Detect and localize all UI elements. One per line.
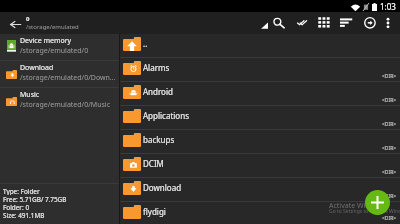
staticText: Size: 491.1MB bbox=[3, 211, 45, 219]
staticText: <DIR> bbox=[382, 145, 397, 152]
staticText: /storage/emulated/0/Down… bbox=[20, 73, 118, 83]
button[interactable]: Signal bbox=[254, 12, 275, 34]
staticText: /storage/emulated/0 bbox=[20, 46, 118, 56]
staticText: Download bbox=[20, 63, 118, 73]
button[interactable]: More options bbox=[377, 12, 398, 34]
staticText: Download bbox=[143, 182, 182, 193]
button[interactable]: Download bbox=[0, 61, 119, 87]
button[interactable]: flydigi bbox=[120, 202, 400, 224]
button[interactable]: Device memory bbox=[0, 34, 119, 60]
staticText: <DIR> bbox=[382, 193, 397, 200]
staticText: Device memory bbox=[20, 36, 118, 46]
staticText: Alarms bbox=[143, 62, 170, 73]
staticText: 1:03 bbox=[380, 1, 396, 12]
button[interactable]: Search bbox=[268, 12, 289, 34]
button[interactable]: Select all bbox=[292, 12, 313, 34]
button[interactable]: backups bbox=[120, 130, 400, 154]
staticText: Free: 5.71GB/ 7.75GB bbox=[3, 195, 67, 203]
staticText: Music bbox=[20, 90, 118, 100]
button[interactable]: Add bbox=[365, 190, 390, 215]
button[interactable]: Alarms bbox=[120, 58, 400, 82]
staticText: /storage/emulated/0/Music bbox=[20, 100, 118, 110]
staticText: Activate Windows bbox=[329, 201, 387, 211]
button[interactable]: DCIM bbox=[120, 154, 400, 178]
staticText: <DIR> bbox=[382, 169, 397, 176]
staticText: .. bbox=[143, 38, 148, 49]
button[interactable]: Download bbox=[120, 178, 400, 202]
staticText: Folder: 0 bbox=[3, 203, 30, 211]
button[interactable]: Sort bbox=[335, 12, 356, 34]
staticText: Android bbox=[143, 86, 173, 97]
staticText: Applications bbox=[143, 110, 189, 121]
button[interactable]: .. bbox=[120, 34, 400, 58]
staticText: backups bbox=[143, 134, 175, 145]
button[interactable]: Music bbox=[0, 88, 119, 114]
staticText: Type: Folder bbox=[3, 187, 40, 195]
staticText: DCIM bbox=[143, 158, 164, 169]
staticText: flydigi bbox=[143, 206, 166, 217]
staticText: <DIR> bbox=[382, 121, 397, 128]
staticText: <DIR> bbox=[382, 73, 397, 80]
button[interactable]: Applications bbox=[120, 106, 400, 130]
button[interactable]: Grid view bbox=[313, 12, 334, 34]
button[interactable]: Transfer bbox=[359, 12, 380, 34]
button[interactable]: Android bbox=[120, 82, 400, 106]
staticText: <DIR> bbox=[382, 97, 397, 104]
staticText: 0 bbox=[26, 15, 30, 23]
staticText: <DIR> bbox=[382, 215, 397, 222]
staticText: /storage/emulated bbox=[26, 23, 79, 31]
staticText: Go to Settings to activate Windows. bbox=[329, 208, 400, 215]
button[interactable]: Back bbox=[2, 12, 26, 34]
